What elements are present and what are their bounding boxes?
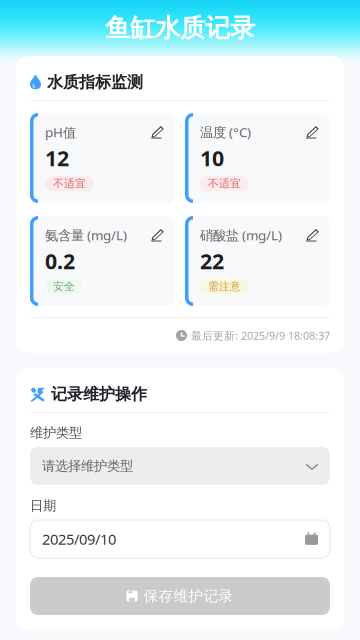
staticText: 日期 [30, 498, 56, 514]
staticText: 水质指标监测 [47, 72, 143, 92]
staticText: 0.2 [45, 247, 75, 275]
staticText: 温度 (°C) [200, 123, 251, 141]
button[interactable]: 编辑氨含量 (mg/L) [151, 228, 164, 241]
staticText: 需注意 [208, 280, 241, 293]
button[interactable]: 保存维护记录 [30, 577, 330, 615]
staticText: 硝酸盐 (mg/L) [200, 226, 282, 244]
staticText: 氨含量 (mg/L) [45, 226, 127, 244]
staticText: 不适宜 [208, 177, 241, 190]
staticText: 请选择维护类型 [42, 458, 133, 474]
staticText: 记录维护操作 [51, 384, 147, 404]
button[interactable]: 2025/09/10 [30, 520, 330, 558]
staticText: 2025/09/10 [42, 529, 116, 549]
staticText: 最后更新: 2025/9/9 18:08:37 [191, 328, 330, 343]
button[interactable]: 请选择维护类型 [30, 447, 330, 485]
button[interactable]: 编辑硝酸盐 (mg/L) [306, 228, 319, 241]
staticText: 安全 [53, 280, 75, 293]
button[interactable]: 编辑pH值 [151, 125, 164, 138]
staticText: 不适宜 [53, 177, 86, 190]
button[interactable]: 编辑温度 (°C) [306, 125, 319, 138]
staticText: 10 [200, 144, 224, 172]
staticText: 鱼缸水质记录 [105, 12, 255, 43]
staticText: 12 [45, 144, 69, 172]
staticText: pH值 [45, 123, 76, 141]
staticText: 22 [200, 247, 224, 275]
staticText: 维护类型 [30, 425, 82, 441]
staticText: 保存维护记录 [143, 587, 233, 605]
